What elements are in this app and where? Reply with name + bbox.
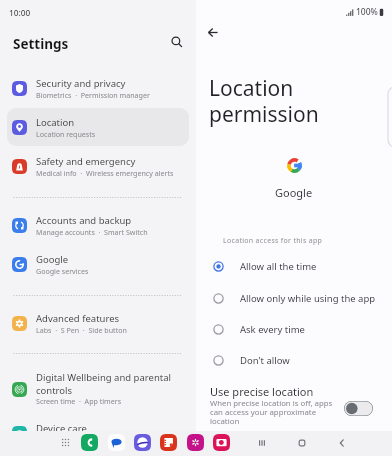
staticText: Google services [36,266,89,276]
button[interactable]: Location [7,109,189,139]
button[interactable]: Device care [7,415,189,445]
staticText: Use precise location [210,384,314,399]
staticText: Digital Wellbeing and parental [36,371,171,384]
staticText: Don't allow [240,354,290,367]
staticText: Security and privacy [36,77,126,90]
staticText: Biometrics · Permission manager [36,90,150,100]
button[interactable]: notes [160,434,177,451]
staticText: Allow all the time [240,260,317,273]
button[interactable]: Apps [57,434,74,451]
button[interactable]: Allow only while using the app [196,283,392,314]
staticText: Labs · S Pen · Side button [36,325,127,335]
staticText: 100% [356,6,378,18]
button[interactable]: Back [332,433,352,453]
staticText: Location [36,116,75,129]
button[interactable]: camera [213,434,230,451]
staticText: When precise location is off, apps can a… [210,398,333,426]
button[interactable]: messages [108,434,125,451]
button[interactable]: gallery [187,434,204,451]
staticText: Advanced features [36,312,120,325]
staticText: controls [36,384,73,397]
staticText: Google [36,253,69,266]
button[interactable]: Allow all the time [196,251,392,282]
button[interactable]: Accounts and backup [7,206,189,236]
staticText: Device care [36,422,87,435]
staticText: Accounts and backup [36,214,132,227]
staticText: Allow only while using the app [240,292,376,305]
button[interactable]: Use precise location [344,401,373,416]
button[interactable]: phone [81,434,98,451]
button[interactable]: Home [292,433,312,453]
staticText: Ask every time [240,323,305,336]
button[interactable]: Google [7,246,189,276]
staticText: Screen time · App timers [36,396,122,406]
button[interactable]: Don't allow [196,345,392,376]
button[interactable]: Ask every time [196,314,392,345]
staticText: Location requests [36,129,96,139]
staticText: Medical info · Wireless emergency alerts [36,168,174,178]
button[interactable]: Advanced features [7,305,189,335]
button[interactable]: Back [201,21,224,44]
staticText: Location permission [209,74,319,129]
staticText: Settings [13,35,69,53]
staticText: Safety and emergency [36,155,136,168]
button[interactable]: Digital Wellbeing and parental [7,364,189,404]
button[interactable]: Safety and emergency [7,148,189,178]
staticText: Google [275,185,313,200]
staticText: Location access for this app [223,236,323,246]
button[interactable]: internet [134,434,151,451]
staticText: Manage accounts · Smart Switch [36,227,148,237]
button[interactable]: Security and privacy [7,70,189,100]
button[interactable]: Search [164,29,190,55]
staticText: 10:00 [9,7,31,18]
button[interactable]: Recents [252,433,272,453]
